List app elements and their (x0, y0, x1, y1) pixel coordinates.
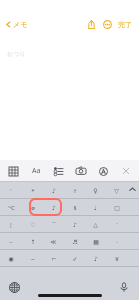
staticText: ↑ (30, 238, 36, 245)
button[interactable]: More (99, 16, 115, 32)
staticText: ♀ (93, 187, 98, 194)
staticText: § (73, 204, 77, 212)
button[interactable]: ♪ (43, 199, 64, 216)
button[interactable]: ♀ (85, 182, 106, 199)
button[interactable]: ø (22, 199, 43, 216)
staticText: ♪ (52, 204, 56, 211)
button[interactable]: Share (83, 16, 99, 32)
button[interactable]: Collapse (125, 182, 139, 196)
button[interactable]: ♪ (64, 216, 85, 233)
staticText: ⌣ (31, 256, 35, 262)
button[interactable]: ¥ (106, 250, 127, 267)
button[interactable]: ✓ (64, 250, 85, 267)
button[interactable]: °C (0, 199, 22, 216)
button[interactable]: ¦ (0, 216, 22, 233)
staticText: ¥ (115, 255, 119, 263)
staticText: ▽ (114, 187, 119, 194)
staticText: ♪ (73, 221, 77, 228)
staticText: △ (93, 221, 98, 228)
staticText: メモ (13, 20, 28, 29)
staticText: ✓ (72, 255, 78, 262)
staticText: ø (31, 204, 35, 212)
staticText: ♪ (52, 187, 56, 194)
staticText: ¦ (9, 221, 13, 229)
button[interactable]: □ (106, 199, 127, 216)
button[interactable]: Dictation (115, 278, 133, 296)
button[interactable]: Table (4, 162, 22, 180)
staticText: ▦ (93, 238, 99, 245)
staticText: ♡ (30, 221, 36, 228)
staticText: ♬ (72, 238, 78, 245)
button[interactable]: Camera (72, 162, 90, 180)
button[interactable]: ▽ (106, 182, 127, 199)
staticText: °C (8, 204, 15, 212)
button[interactable]: ♡ (22, 216, 43, 233)
button[interactable]: Change keyboard (5, 278, 23, 296)
staticText: ⌐ (51, 255, 57, 262)
button[interactable]: ⌐ (43, 250, 64, 267)
staticText: ◉ (8, 255, 14, 262)
staticText: 完了 (118, 20, 132, 29)
staticText: ¨ (115, 221, 119, 229)
button[interactable]: ♪ (85, 250, 106, 267)
button[interactable]: ~ (0, 233, 22, 250)
button[interactable]: △ (85, 216, 106, 233)
staticText: ♪ (94, 255, 98, 262)
button[interactable]: ↑ (22, 233, 43, 250)
staticText: ' (10, 187, 12, 195)
staticText: おつり (7, 50, 26, 58)
button[interactable]: Markup (94, 162, 112, 180)
button[interactable]: 完了 (115, 18, 135, 31)
button[interactable]: § (64, 199, 85, 216)
button[interactable]: ¨ (106, 216, 127, 233)
staticText: · (116, 238, 118, 246)
button[interactable]: ♪ (43, 182, 64, 199)
staticText: □ (114, 204, 120, 211)
button[interactable]: Text format (27, 162, 45, 180)
button[interactable]: Close keyboard (117, 162, 135, 180)
button[interactable]: Checklist (49, 162, 67, 180)
button[interactable]: ≪ (43, 233, 64, 250)
button[interactable]: メモ (3, 18, 30, 31)
staticText: ~ (9, 238, 13, 246)
staticText: ♩ (94, 204, 97, 211)
staticText: † (73, 187, 77, 195)
button[interactable]: ♬ (64, 233, 85, 250)
button[interactable]: ' (0, 182, 22, 199)
button[interactable]: ◉ (0, 250, 22, 267)
button[interactable]: * (22, 182, 43, 199)
staticText: ≪ (50, 238, 57, 245)
staticText: Aa (32, 166, 41, 176)
button[interactable]: † (64, 182, 85, 199)
staticText: ⌒ (51, 221, 57, 229)
button[interactable]: ⌣ (22, 250, 43, 267)
button[interactable]: ⌒ (43, 216, 64, 233)
button[interactable]: ▦ (85, 233, 106, 250)
button[interactable]: ♩ (85, 199, 106, 216)
button[interactable]: · (106, 233, 127, 250)
staticText: * (31, 187, 35, 195)
